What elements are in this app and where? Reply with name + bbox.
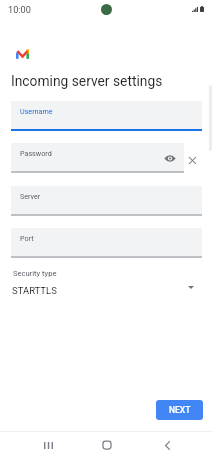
staticText: Username bbox=[20, 107, 53, 115]
staticText: Port bbox=[20, 234, 34, 242]
staticText: Server bbox=[20, 192, 41, 200]
button[interactable]: Recent apps bbox=[28, 433, 68, 457]
button[interactable]: Password bbox=[11, 143, 184, 174]
button[interactable]: Port bbox=[11, 228, 202, 259]
staticText: NEXT bbox=[169, 405, 191, 415]
staticText: STARTTLS bbox=[12, 285, 57, 296]
button[interactable]: Show password bbox=[163, 151, 177, 166]
button[interactable]: Username bbox=[11, 101, 202, 132]
staticText: 10:00 bbox=[8, 4, 31, 15]
button[interactable]: NEXT bbox=[156, 400, 203, 420]
staticText: Security type bbox=[13, 269, 57, 278]
button[interactable]: Server bbox=[11, 186, 202, 217]
staticText: Password bbox=[20, 149, 52, 157]
button[interactable]: Clear password bbox=[184, 149, 201, 171]
button[interactable]: Security type bbox=[0, 262, 213, 298]
button[interactable]: Back bbox=[147, 433, 187, 457]
staticText: Incoming server settings bbox=[11, 73, 163, 89]
button[interactable]: Home bbox=[87, 433, 127, 457]
